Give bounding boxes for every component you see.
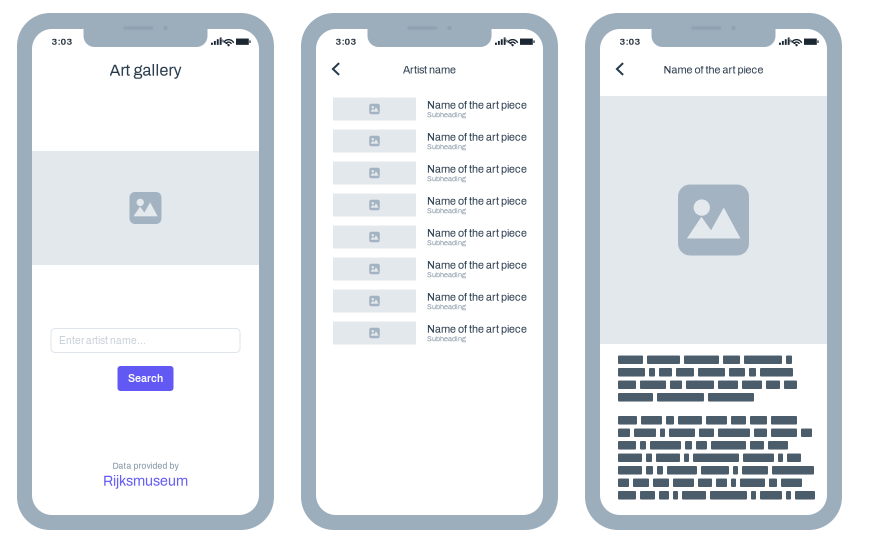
staticText: Subheading xyxy=(427,143,466,151)
staticText: Name of the art piece xyxy=(427,323,527,335)
staticText: Rijksmuseum xyxy=(103,473,188,489)
button[interactable]: Name of the art piece xyxy=(316,189,543,221)
staticText: 3:03 xyxy=(619,36,640,47)
staticText: Artist name xyxy=(403,64,456,76)
button[interactable]: Name of the art piece xyxy=(316,253,543,285)
staticText: Art gallery xyxy=(109,62,181,79)
button[interactable]: Name of the art piece xyxy=(316,317,543,349)
button[interactable]: Search xyxy=(117,366,173,391)
staticText: 3:03 xyxy=(335,36,356,47)
staticText: Subheading xyxy=(427,239,466,247)
staticText: Name of the art piece xyxy=(427,163,527,175)
staticText: Subheading xyxy=(427,111,466,119)
staticText: Subheading xyxy=(427,303,466,311)
button[interactable]: Enter artist name... xyxy=(51,328,240,352)
button[interactable]: Rijksmuseum xyxy=(103,473,188,489)
button[interactable]: Name of the art piece xyxy=(316,221,543,253)
staticText: Enter artist name... xyxy=(59,335,146,346)
staticText: Subheading xyxy=(427,175,466,183)
staticText: Name of the art piece xyxy=(427,131,527,143)
button[interactable]: Name of the art piece xyxy=(316,157,543,189)
staticText: Name of the art piece xyxy=(427,227,527,239)
staticText: Name of the art piece xyxy=(427,259,527,271)
staticText: Search xyxy=(128,373,163,384)
button[interactable]: Name of the art piece xyxy=(316,125,543,157)
staticText: Name of the art piece xyxy=(427,99,527,111)
staticText: Name of the art piece xyxy=(663,64,763,76)
button[interactable]: Back xyxy=(323,56,349,82)
staticText: 3:03 xyxy=(51,36,72,47)
staticText: Subheading xyxy=(427,271,466,279)
button[interactable]: Name of the art piece xyxy=(316,93,543,125)
staticText: Subheading xyxy=(427,335,466,343)
staticText: Subheading xyxy=(427,207,466,215)
staticText: Name of the art piece xyxy=(427,195,527,207)
staticText: Name of the art piece xyxy=(427,291,527,303)
button[interactable]: Back xyxy=(607,56,633,82)
button[interactable]: Name of the art piece xyxy=(316,285,543,317)
staticText: Data provided by xyxy=(112,461,178,471)
